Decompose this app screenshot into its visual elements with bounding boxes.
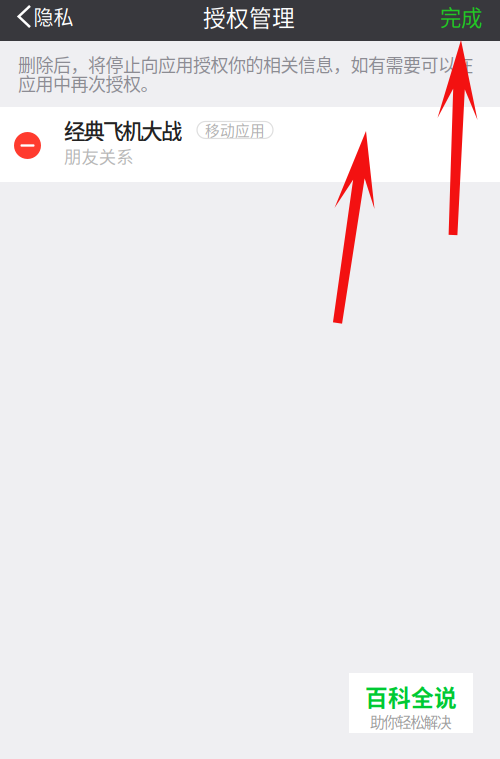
staticText: 移动应用 bbox=[205, 119, 265, 140]
staticText: 助你轻松解决 bbox=[370, 711, 452, 732]
staticText: 删除后，将停止向应用授权你的相关信息，如有需要可以在 bbox=[18, 51, 473, 77]
staticText: 应用中再次授权。 bbox=[18, 70, 158, 96]
staticText: 隐私 bbox=[34, 2, 74, 31]
button[interactable]: 隐私 bbox=[0, 0, 84, 41]
button[interactable]: 完成 bbox=[426, 0, 500, 41]
staticText: 朋友关系 bbox=[64, 143, 133, 168]
button[interactable]: 经典飞机大战 bbox=[0, 107, 500, 182]
staticText: 百科全说 bbox=[365, 680, 457, 713]
staticText: 完成 bbox=[440, 1, 482, 32]
staticText: 经典飞机大战 bbox=[64, 114, 182, 145]
staticText: 授权管理 bbox=[203, 0, 295, 33]
